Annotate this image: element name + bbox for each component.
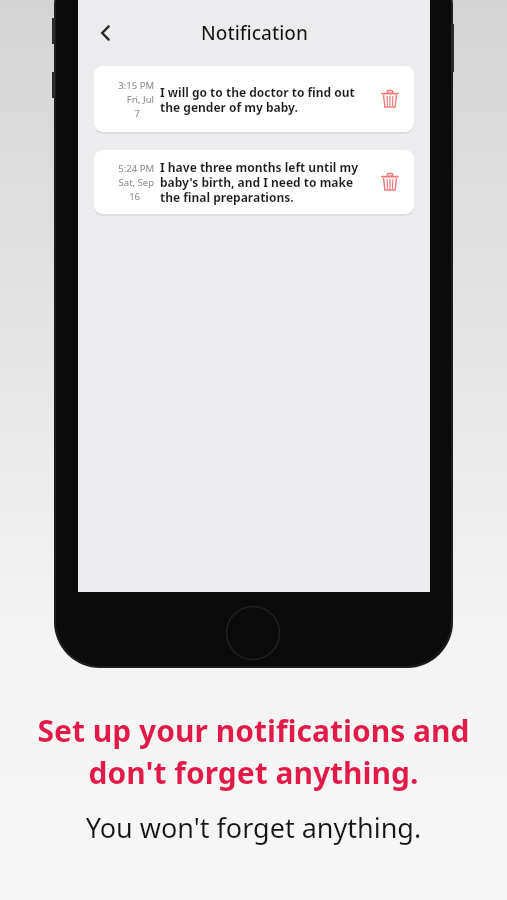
staticText: Sat, Sep xyxy=(118,176,154,189)
staticText: 3:15 PM xyxy=(118,79,154,92)
button[interactable]: Delete xyxy=(370,162,410,202)
staticText: I will go to the doctor to find out the … xyxy=(160,84,366,115)
staticText: Fri, Jul xyxy=(126,93,154,106)
button[interactable]: 5:24 PM xyxy=(94,150,414,214)
staticText: I have three months left until my baby's… xyxy=(160,159,366,205)
button[interactable]: Delete xyxy=(370,79,410,119)
button[interactable]: 3:15 PM xyxy=(94,66,414,132)
staticText: You won't forget anything. xyxy=(14,809,493,846)
button[interactable]: Back xyxy=(84,11,128,55)
other: Home xyxy=(225,605,281,661)
staticText: 7 xyxy=(134,107,140,120)
staticText: Set up your notifications and don't forg… xyxy=(14,710,493,793)
staticText: 5:24 PM xyxy=(118,162,154,175)
staticText: Notification xyxy=(201,20,308,46)
staticText: 16 xyxy=(129,190,140,203)
